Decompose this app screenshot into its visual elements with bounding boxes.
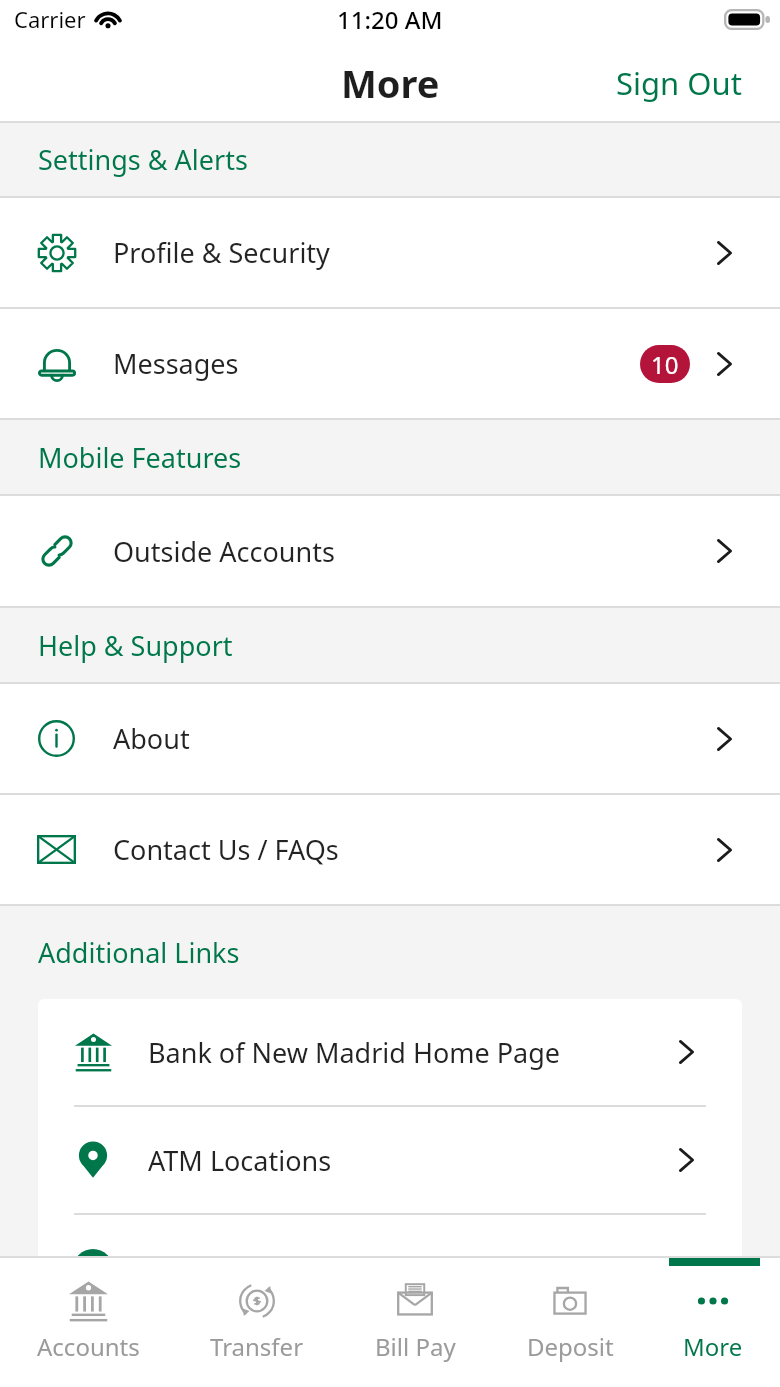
button[interactable]: Bank of New Madrid Home Page (38, 999, 742, 1105)
button[interactable]: Accounts (10, 1256, 166, 1387)
button[interactable]: About (0, 684, 780, 793)
staticText: Transfer (210, 1330, 304, 1363)
button[interactable]: Messages (0, 309, 780, 418)
staticText: Settings & Alerts (38, 141, 248, 178)
staticText: Accounts (37, 1330, 140, 1363)
button[interactable]: Bill Pay (337, 1256, 493, 1387)
staticText: About (113, 720, 190, 757)
staticText: Outside Accounts (113, 533, 335, 570)
staticText: Bill Pay (375, 1330, 456, 1363)
button[interactable]: More (635, 1256, 780, 1387)
staticText: Contact Us / FAQs (113, 831, 339, 868)
staticText: More (683, 1330, 743, 1363)
staticText: Deposit (527, 1330, 614, 1363)
button[interactable]: Sign Out (578, 50, 780, 116)
staticText: Sign Out (616, 62, 742, 104)
staticText: 11:20 AM (337, 3, 443, 36)
staticText: ATM Locations (148, 1142, 332, 1179)
staticText: Carrier (14, 4, 86, 34)
button[interactable]: Outside Accounts (0, 496, 780, 606)
staticText: Additional Links (38, 934, 240, 971)
button[interactable]: Transfer (179, 1256, 335, 1387)
staticText: Mobile Features (38, 439, 242, 476)
button[interactable]: Contact Us / FAQs (0, 795, 780, 904)
staticText: 10 (651, 348, 679, 381)
staticText: Help & Support (38, 627, 233, 664)
staticText: Messages (113, 345, 239, 382)
button[interactable]: ATM Locations (38, 1107, 742, 1213)
button[interactable]: Deposit (492, 1256, 648, 1387)
staticText: More (341, 57, 440, 109)
button[interactable]: Profile & Security (0, 198, 780, 307)
staticText: Profile & Security (113, 234, 330, 271)
button[interactable]: Contact Us (38, 1215, 742, 1256)
staticText: Bank of New Madrid Home Page (148, 1034, 561, 1071)
